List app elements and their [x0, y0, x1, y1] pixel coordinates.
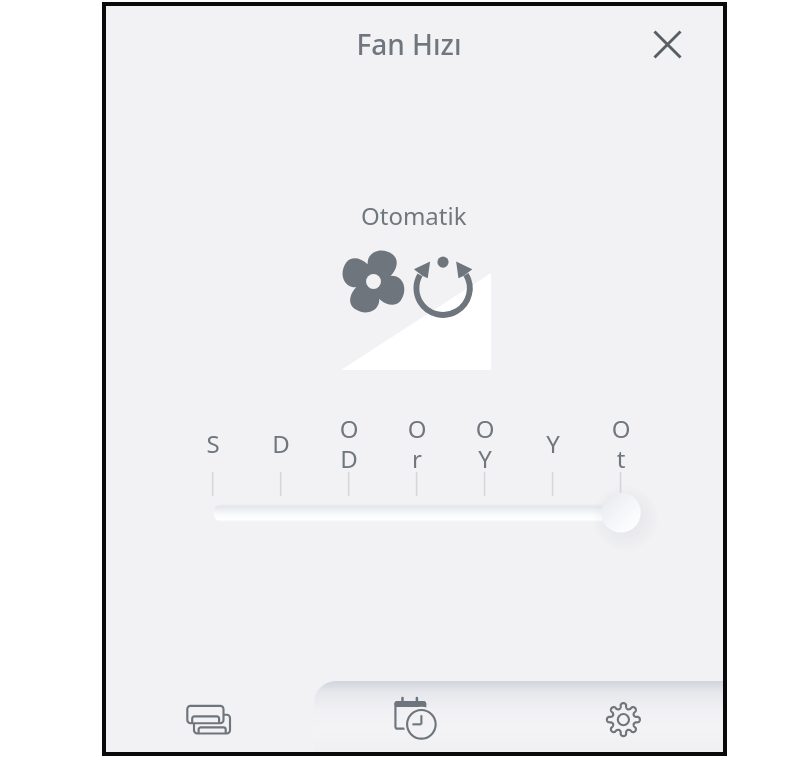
staticText: O — [599, 412, 643, 445]
staticText: O — [395, 412, 439, 445]
button[interactable]: Schedule — [311, 672, 517, 752]
button[interactable]: Fan speed slider — [601, 493, 641, 533]
staticText: Y — [463, 442, 507, 475]
staticText: O — [327, 412, 371, 445]
staticText: r — [395, 442, 439, 475]
staticText: Fan Hızı — [356, 25, 462, 63]
staticText: D — [259, 427, 303, 460]
staticText: D — [327, 442, 371, 475]
button[interactable]: Close — [645, 22, 689, 66]
button[interactable]: Air conditioner — [106, 672, 311, 752]
staticText: Otomatik — [361, 199, 467, 232]
staticText: Y — [531, 427, 575, 460]
button[interactable]: Settings — [517, 672, 723, 752]
staticText: t — [599, 442, 643, 475]
staticText: S — [191, 427, 235, 460]
staticText: O — [463, 412, 507, 445]
